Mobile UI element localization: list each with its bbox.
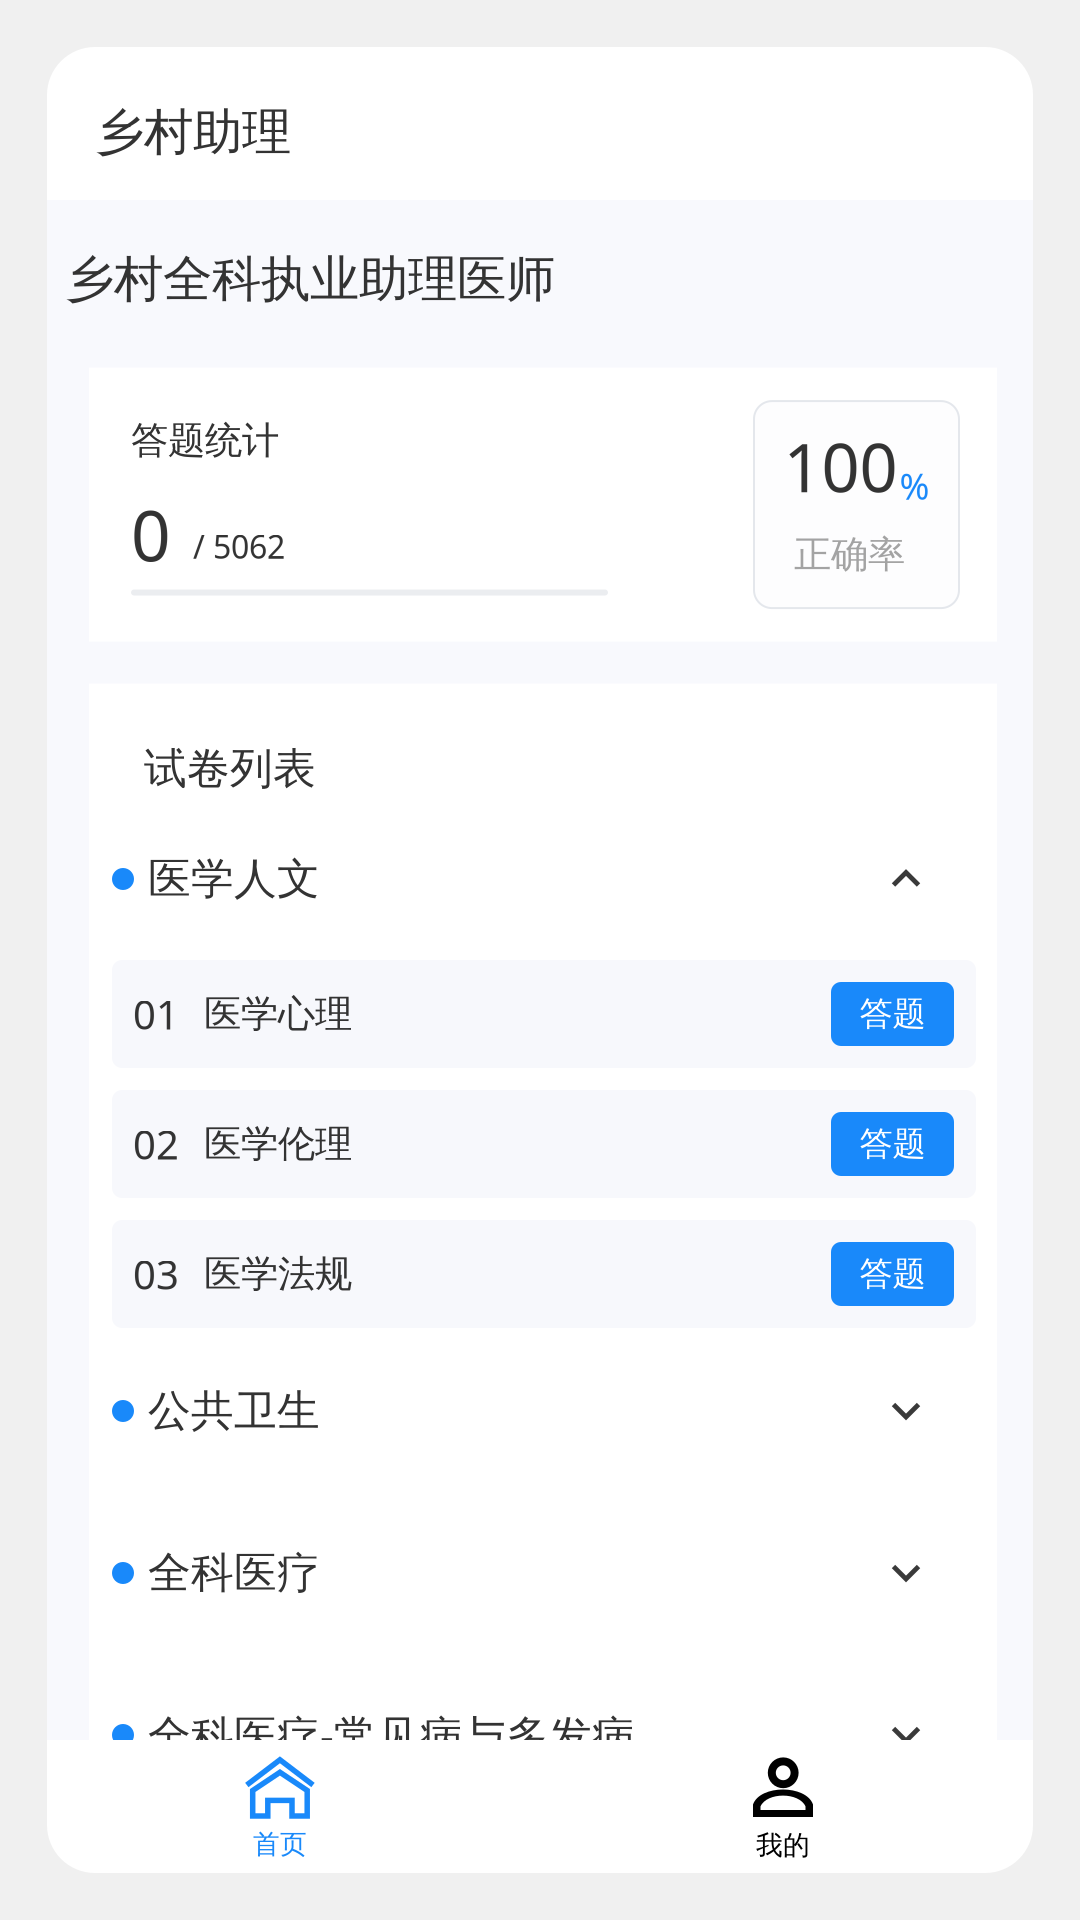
staticText: 公共卫生: [148, 1385, 320, 1437]
staticText: 医学心理: [204, 991, 352, 1037]
button[interactable]: 医学人文: [112, 836, 998, 922]
staticText: 答题: [859, 1123, 925, 1164]
staticText: 医学法规: [204, 1251, 352, 1297]
staticText: 医学伦理: [204, 1121, 352, 1167]
staticText: 医学人文: [148, 853, 320, 905]
staticText: 试卷列表: [144, 743, 316, 795]
staticText: 03: [133, 1247, 179, 1300]
staticText: %: [899, 462, 929, 510]
button[interactable]: 公共卫生: [112, 1368, 998, 1454]
button[interactable]: 03: [112, 1220, 976, 1328]
staticText: 乡村助理: [95, 102, 291, 163]
staticText: 100: [783, 422, 897, 511]
staticText: 答题统计: [131, 418, 279, 463]
staticText: 正确率: [794, 532, 905, 577]
staticText: 答题: [859, 1253, 925, 1294]
staticText: 我的: [756, 1829, 810, 1862]
staticText: 02: [133, 1117, 179, 1170]
button[interactable]: 首页: [47, 1740, 513, 1873]
staticText: 01: [133, 987, 179, 1040]
button[interactable]: 02: [112, 1090, 976, 1198]
button[interactable]: 全科医疗: [112, 1530, 998, 1616]
staticText: / 5062: [193, 525, 285, 567]
staticText: 首页: [253, 1828, 307, 1861]
staticText: 答题: [859, 993, 925, 1034]
staticText: 0: [131, 488, 171, 581]
button[interactable]: 全科医疗-常见病与多发病: [112, 1692, 998, 1778]
staticText: 全科医疗-常见病与多发病: [148, 1707, 635, 1763]
staticText: 全科医疗: [148, 1547, 320, 1599]
button[interactable]: 01: [112, 960, 976, 1068]
button[interactable]: 我的: [513, 1740, 1033, 1873]
staticText: 乡村全科执业助理医师: [65, 249, 555, 310]
